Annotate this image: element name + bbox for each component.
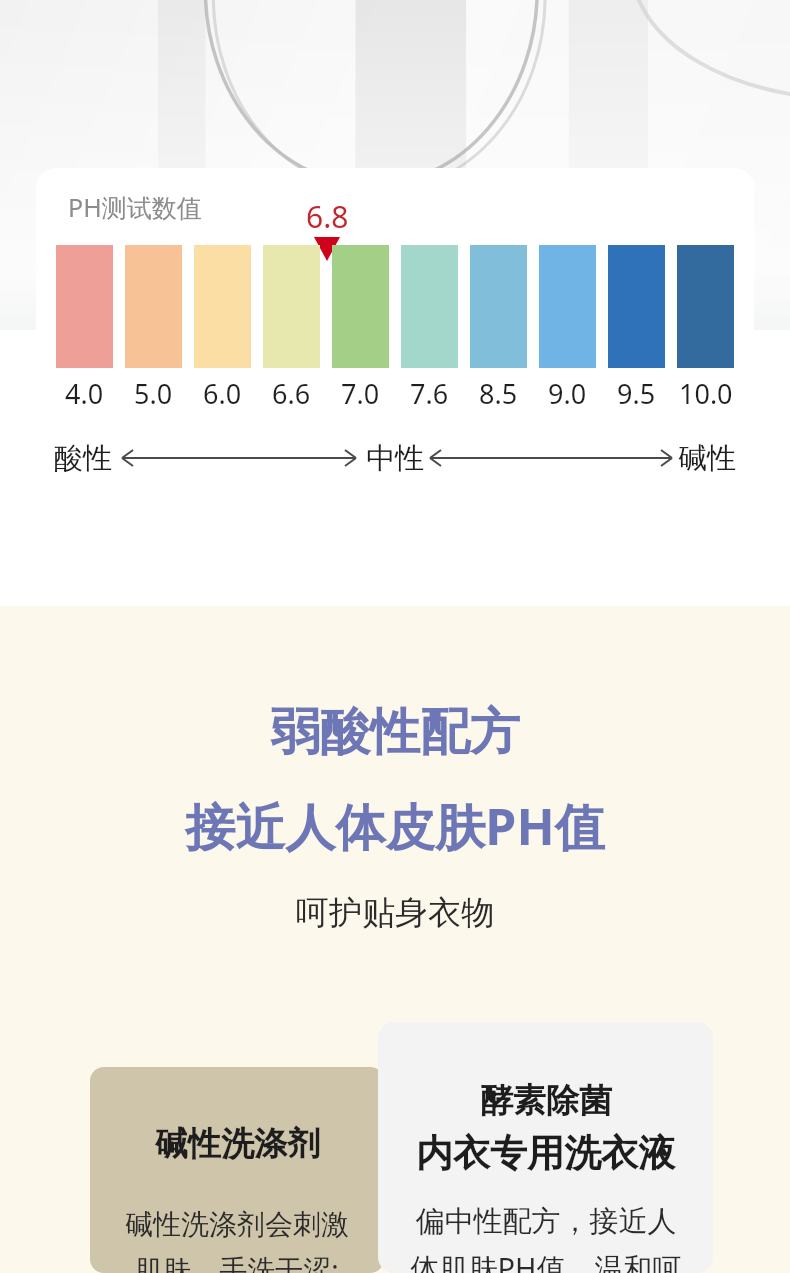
staticText: 5.0 (134, 375, 173, 412)
staticText: 4.0 (65, 375, 104, 412)
button[interactable]: 酵素除菌 (378, 1022, 713, 1273)
staticText: 7.6 (410, 375, 449, 412)
staticText: 中性 (366, 440, 424, 477)
staticText: 7.0 (341, 375, 380, 412)
staticText: 碱性 (678, 440, 736, 477)
staticText: 碱性洗涤剂会刺激 肌肤，手洗干涩; (125, 1207, 349, 1273)
staticText: 9.0 (548, 375, 587, 412)
staticText: 酸性 (54, 440, 112, 477)
staticText: 6.8 (306, 196, 349, 237)
staticText: 6.6 (272, 375, 311, 412)
staticText: 碱性洗涤剂 (155, 1123, 320, 1165)
staticText: 9.5 (617, 375, 656, 412)
button[interactable]: 碱性洗涤剂 (90, 1067, 384, 1273)
staticText: 呵护贴身衣物 (296, 892, 494, 934)
staticText: 偏中性配方，接近人 体肌肤PH值，温和呵 (410, 1203, 682, 1273)
staticText: 10.0 (679, 375, 733, 412)
staticText: 内衣专用洗衣液 (416, 1130, 675, 1177)
staticText: 弱酸性配方 (270, 701, 520, 764)
staticText: PH测试数值 (68, 190, 202, 224)
staticText: 6.0 (203, 375, 242, 412)
staticText: 8.5 (479, 375, 518, 412)
button[interactable]: PH测试数值 (36, 168, 754, 502)
staticText: 接近人体皮肤PH值 (185, 792, 605, 860)
staticText: 酵素除菌 (480, 1080, 612, 1122)
